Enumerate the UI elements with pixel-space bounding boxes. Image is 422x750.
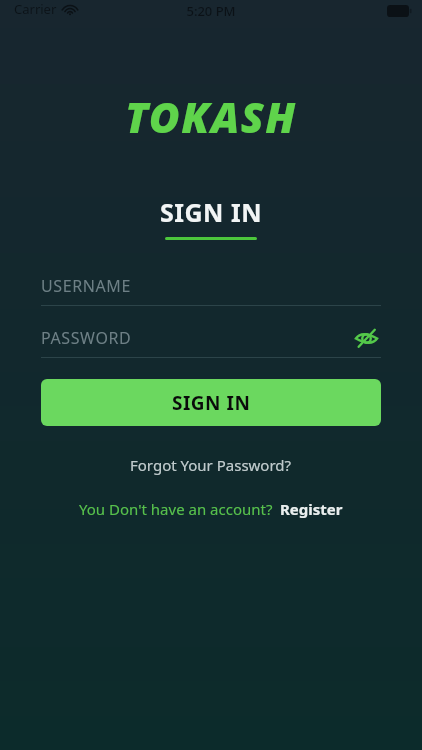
staticText: SIGN IN: [160, 195, 262, 229]
button[interactable]: USERNAME: [41, 267, 381, 306]
staticText: USERNAME: [41, 275, 381, 297]
staticText: PASSWORD: [41, 327, 351, 349]
button[interactable]: SIGN IN: [160, 195, 262, 240]
button[interactable]: Show password: [351, 323, 381, 353]
button[interactable]: PASSWORD: [41, 319, 381, 358]
staticText: Register: [280, 499, 343, 519]
staticText: You Don't have an account?: [79, 499, 273, 519]
button[interactable]: You Don't have an account?: [71, 495, 351, 523]
staticText: Forgot Your Password?: [130, 455, 292, 475]
staticText: 5:20 PM: [186, 2, 236, 20]
button[interactable]: SIGN IN: [41, 379, 381, 426]
button[interactable]: Forgot Your Password?: [120, 451, 302, 479]
staticText: TOKASH: [125, 88, 297, 145]
staticText: Carrier: [14, 0, 57, 18]
staticText: SIGN IN: [172, 390, 251, 416]
